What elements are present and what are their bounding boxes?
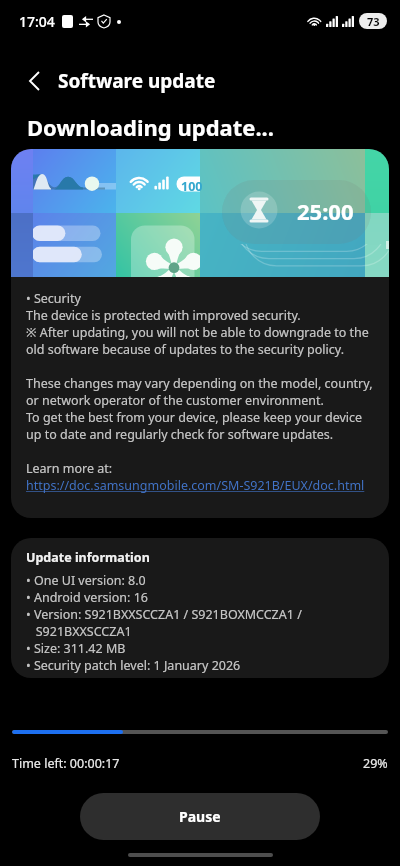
staticText: 29% [363,755,388,772]
staticText: Update information [26,549,150,566]
staticText: 100 [181,178,203,195]
staticText: Learn more at: [26,460,113,477]
staticText: S921BXXSCCZA1 [26,623,132,640]
button[interactable]: Pause [80,793,320,840]
staticText: To get the best from your device, please… [26,409,363,426]
staticText: The device is protected with improved se… [26,307,301,324]
staticText: These changes may vary depending on the … [26,375,373,392]
staticText: • Security patch level: 1 January 2026 [26,657,241,674]
staticText: • Size: 311.42 MB [26,640,126,657]
staticText: Software update [58,68,216,94]
staticText: 25:00 [297,196,354,226]
staticText: Downloading update... [27,112,274,142]
staticText: or network operator of the customer envi… [26,392,324,409]
staticText: • Security [26,290,81,307]
staticText: • Android version: 16 [26,589,148,606]
staticText: • One UI version: 8.0 [26,572,146,589]
staticText: old software because of updates to the s… [26,341,345,358]
staticText: Pause [179,807,221,826]
button[interactable]: https://doc.samsungmobile.com/SM-S921B/E… [26,477,365,494]
staticText: • Version: S921BXXSCCZA1 / S921BOXMCCZA1… [26,606,302,623]
staticText: 73 [367,14,380,29]
staticText: up to date and regularly check for softw… [26,426,334,443]
staticText: Time left: 00:00:17 [12,755,120,772]
staticText: ※ After updating, you will not be able t… [26,324,369,341]
staticText: 17:04 [19,12,55,31]
button[interactable]: Back [17,64,51,98]
